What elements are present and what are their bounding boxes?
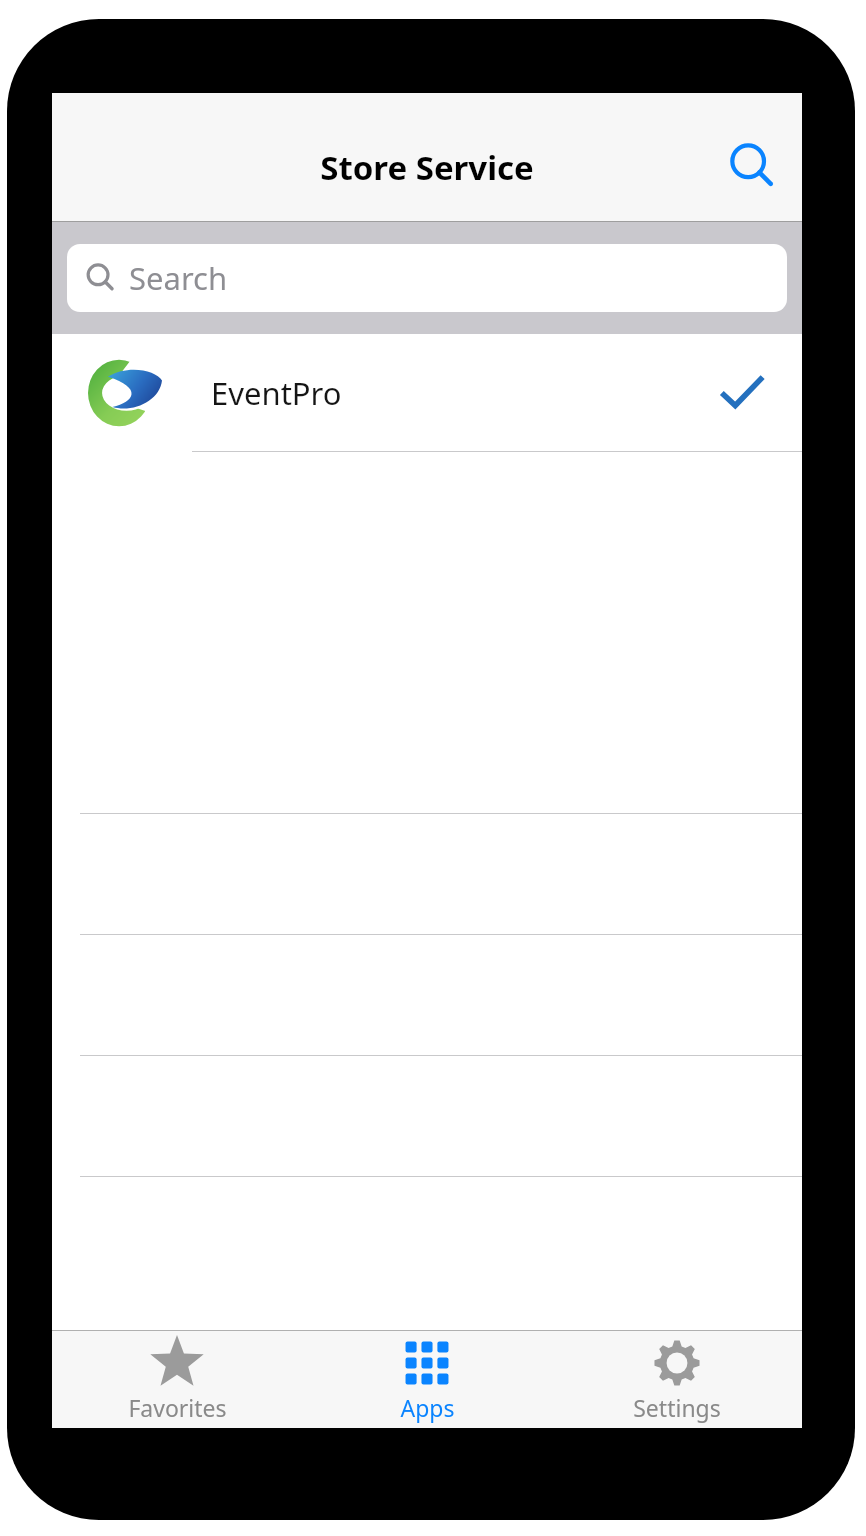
button[interactable]: EventPro (52, 334, 802, 452)
staticText: Favorites (128, 1392, 227, 1423)
button[interactable]: Search (67, 244, 787, 312)
button[interactable]: Favorites (52, 1331, 302, 1428)
staticText: EventPro (211, 372, 342, 414)
staticText: Settings (633, 1392, 721, 1423)
button[interactable]: Search (720, 135, 784, 199)
staticText: Store Service (320, 145, 534, 190)
button[interactable]: Apps (302, 1331, 552, 1428)
button[interactable]: Settings (552, 1331, 802, 1428)
staticText: Apps (400, 1392, 455, 1423)
staticText: Search (129, 257, 228, 299)
